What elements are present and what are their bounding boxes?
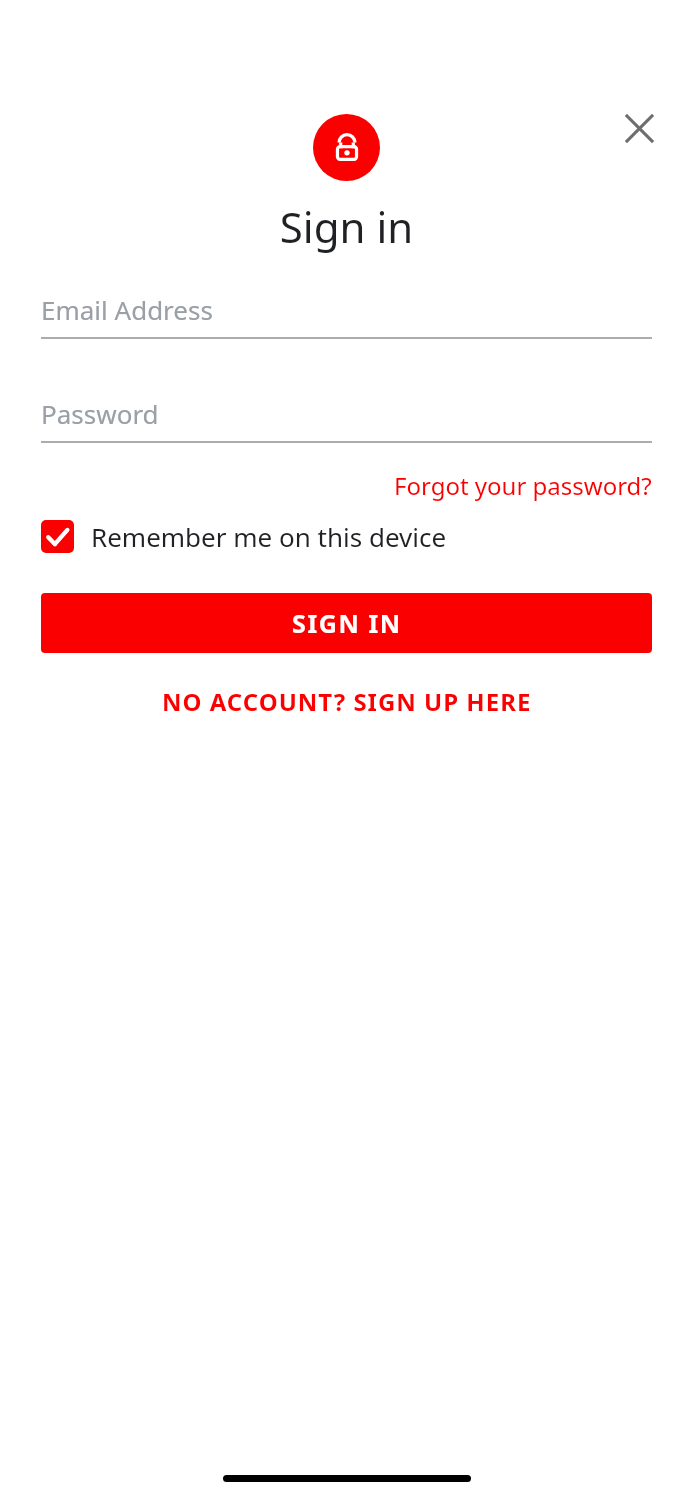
button[interactable]: Email Address — [41, 292, 652, 339]
button[interactable]: Password — [41, 396, 652, 443]
staticText: SIGN IN — [292, 606, 402, 640]
button[interactable]: Close — [612, 101, 666, 155]
button[interactable]: NO ACCOUNT? SIGN UP HERE — [150, 679, 544, 724]
staticText: Email Address — [41, 292, 213, 327]
staticText: Remember me on this device — [91, 519, 447, 554]
staticText: NO ACCOUNT? SIGN UP HERE — [162, 685, 532, 718]
button[interactable]: Remember me on this device — [41, 519, 459, 554]
button[interactable]: Forgot your password? — [394, 465, 652, 506]
staticText: Sign in — [0, 198, 693, 255]
staticText: Password — [41, 396, 159, 431]
button[interactable]: SIGN IN — [41, 593, 652, 653]
staticText: Forgot your password? — [394, 469, 652, 502]
